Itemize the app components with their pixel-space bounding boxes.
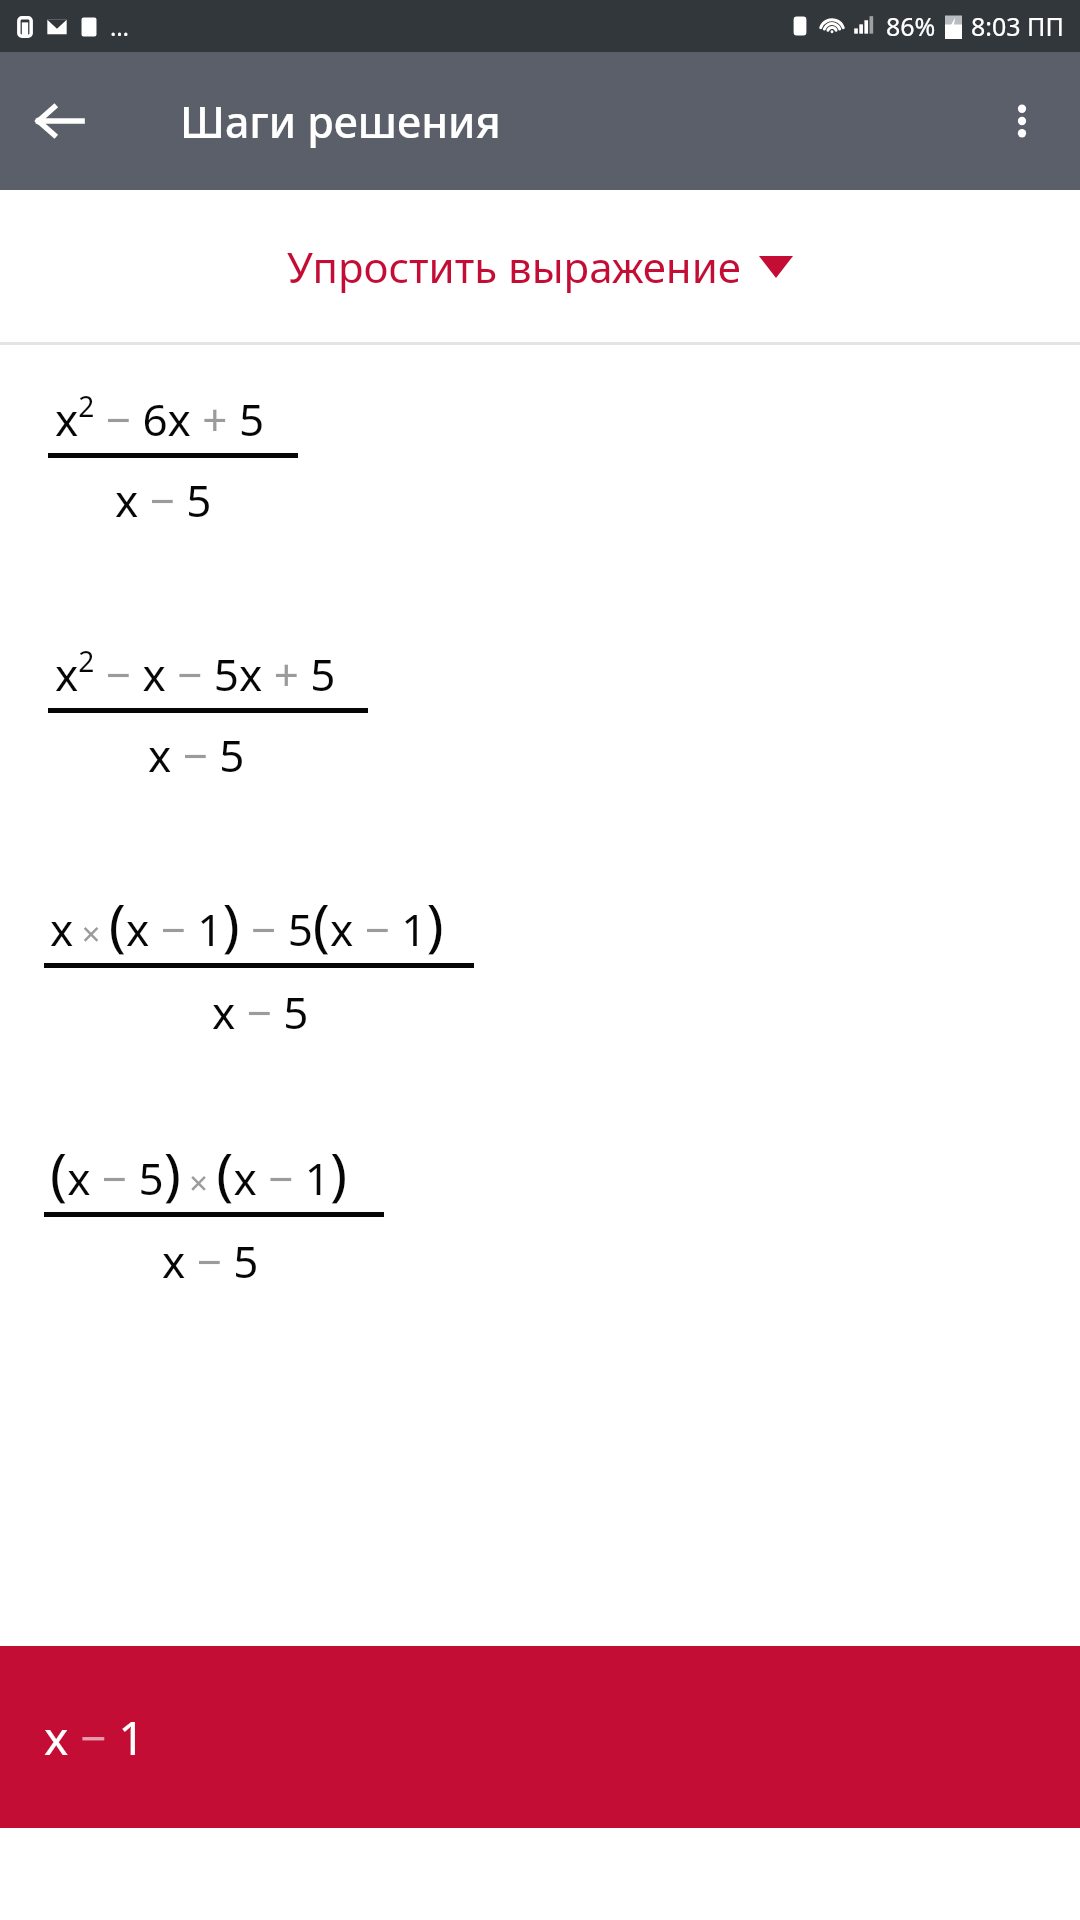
staticText: 8:03 ПП [971,9,1064,43]
staticText: x − 5 [148,725,245,785]
staticText: Упростить выражение [287,238,741,295]
button[interactable]: Упростить выражение [275,228,805,305]
button[interactable]: More options [984,83,1060,159]
staticText: x − 1 [44,1706,145,1769]
staticText: x2 − x − 5x + 5 [55,642,336,704]
staticText: x − 5 [162,1231,259,1291]
staticText: 86% [886,9,936,43]
staticText: Шаги решения [180,92,501,151]
staticText: … [110,10,129,43]
button[interactable]: Back [22,83,98,159]
staticText: x − 5 [115,470,212,530]
staticText: x − 5 [212,982,309,1042]
staticText: x2 − 6x + 5 [55,387,265,449]
staticText: (x − 5) × (x − 1) [50,1134,348,1212]
button[interactable]: x − 1 [0,1646,1080,1828]
staticText: x × (x − 1) − 5(x − 1) [50,885,444,963]
